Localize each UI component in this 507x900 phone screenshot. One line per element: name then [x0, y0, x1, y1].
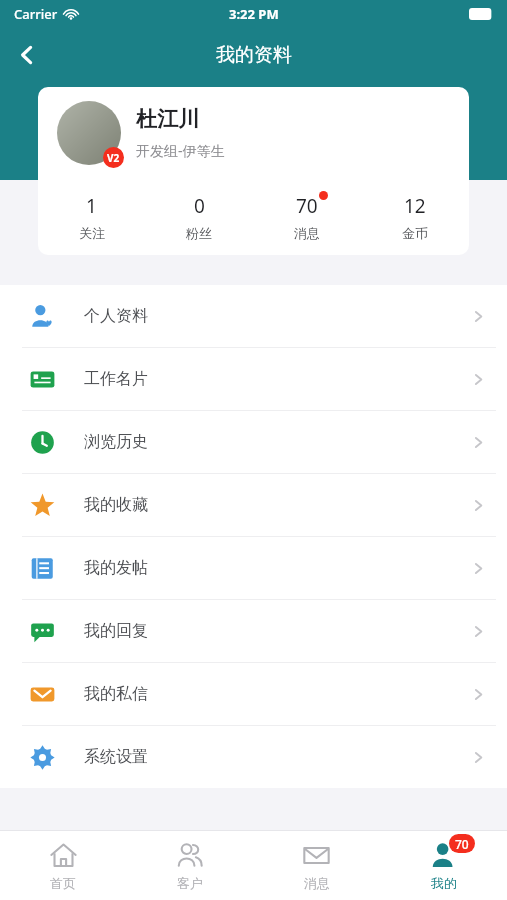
staticText: 70 [296, 193, 318, 219]
staticText: 金币 [402, 225, 428, 241]
button[interactable]: 70 [253, 179, 361, 255]
staticText: V2 [107, 151, 120, 165]
staticText: 70 [455, 836, 469, 852]
staticText: 1 [86, 193, 97, 219]
staticText: 个人资料 [84, 306, 148, 326]
button[interactable]: 消息 [253, 831, 380, 900]
staticText: Carrier [14, 5, 58, 23]
staticText: 客户 [177, 875, 203, 891]
staticText: 我的收藏 [84, 495, 148, 515]
button[interactable]: 我的发帖 [0, 537, 507, 599]
button[interactable]: 我的收藏 [0, 474, 507, 536]
button[interactable]: 浏览历史 [0, 411, 507, 473]
button[interactable]: 客户 [126, 831, 253, 900]
staticText: 0 [194, 193, 205, 219]
staticText: 消息 [294, 225, 320, 241]
button[interactable]: 1 [38, 179, 145, 255]
staticText: 关注 [79, 225, 105, 241]
staticText: 开发组-伊等生 [136, 141, 225, 160]
button[interactable]: 个人资料 [0, 285, 507, 347]
staticText: 首页 [50, 875, 76, 891]
staticText: 12 [404, 193, 426, 219]
staticText: 杜江川 [136, 106, 199, 132]
staticText: 系统设置 [84, 747, 148, 767]
staticText: 浏览历史 [84, 432, 148, 452]
button[interactable]: 我的回复 [0, 600, 507, 662]
button[interactable]: 0 [145, 179, 253, 255]
button[interactable]: 70 [380, 831, 507, 900]
staticText: 我的资料 [216, 43, 292, 67]
staticText: 我的 [431, 875, 457, 891]
staticText: 我的私信 [84, 684, 148, 704]
staticText: 我的发帖 [84, 558, 148, 578]
button[interactable]: 系统设置 [0, 726, 507, 788]
button[interactable]: 工作名片 [0, 348, 507, 410]
staticText: 我的回复 [84, 621, 148, 641]
button[interactable]: 首页 [0, 831, 126, 900]
button[interactable]: 12 [361, 179, 469, 255]
staticText: 粉丝 [186, 225, 212, 241]
button[interactable]: 我的私信 [0, 663, 507, 725]
staticText: 工作名片 [84, 369, 148, 389]
button[interactable]: Back [0, 28, 54, 82]
staticText: 3:22 PM [229, 5, 279, 23]
staticText: 消息 [304, 875, 330, 891]
